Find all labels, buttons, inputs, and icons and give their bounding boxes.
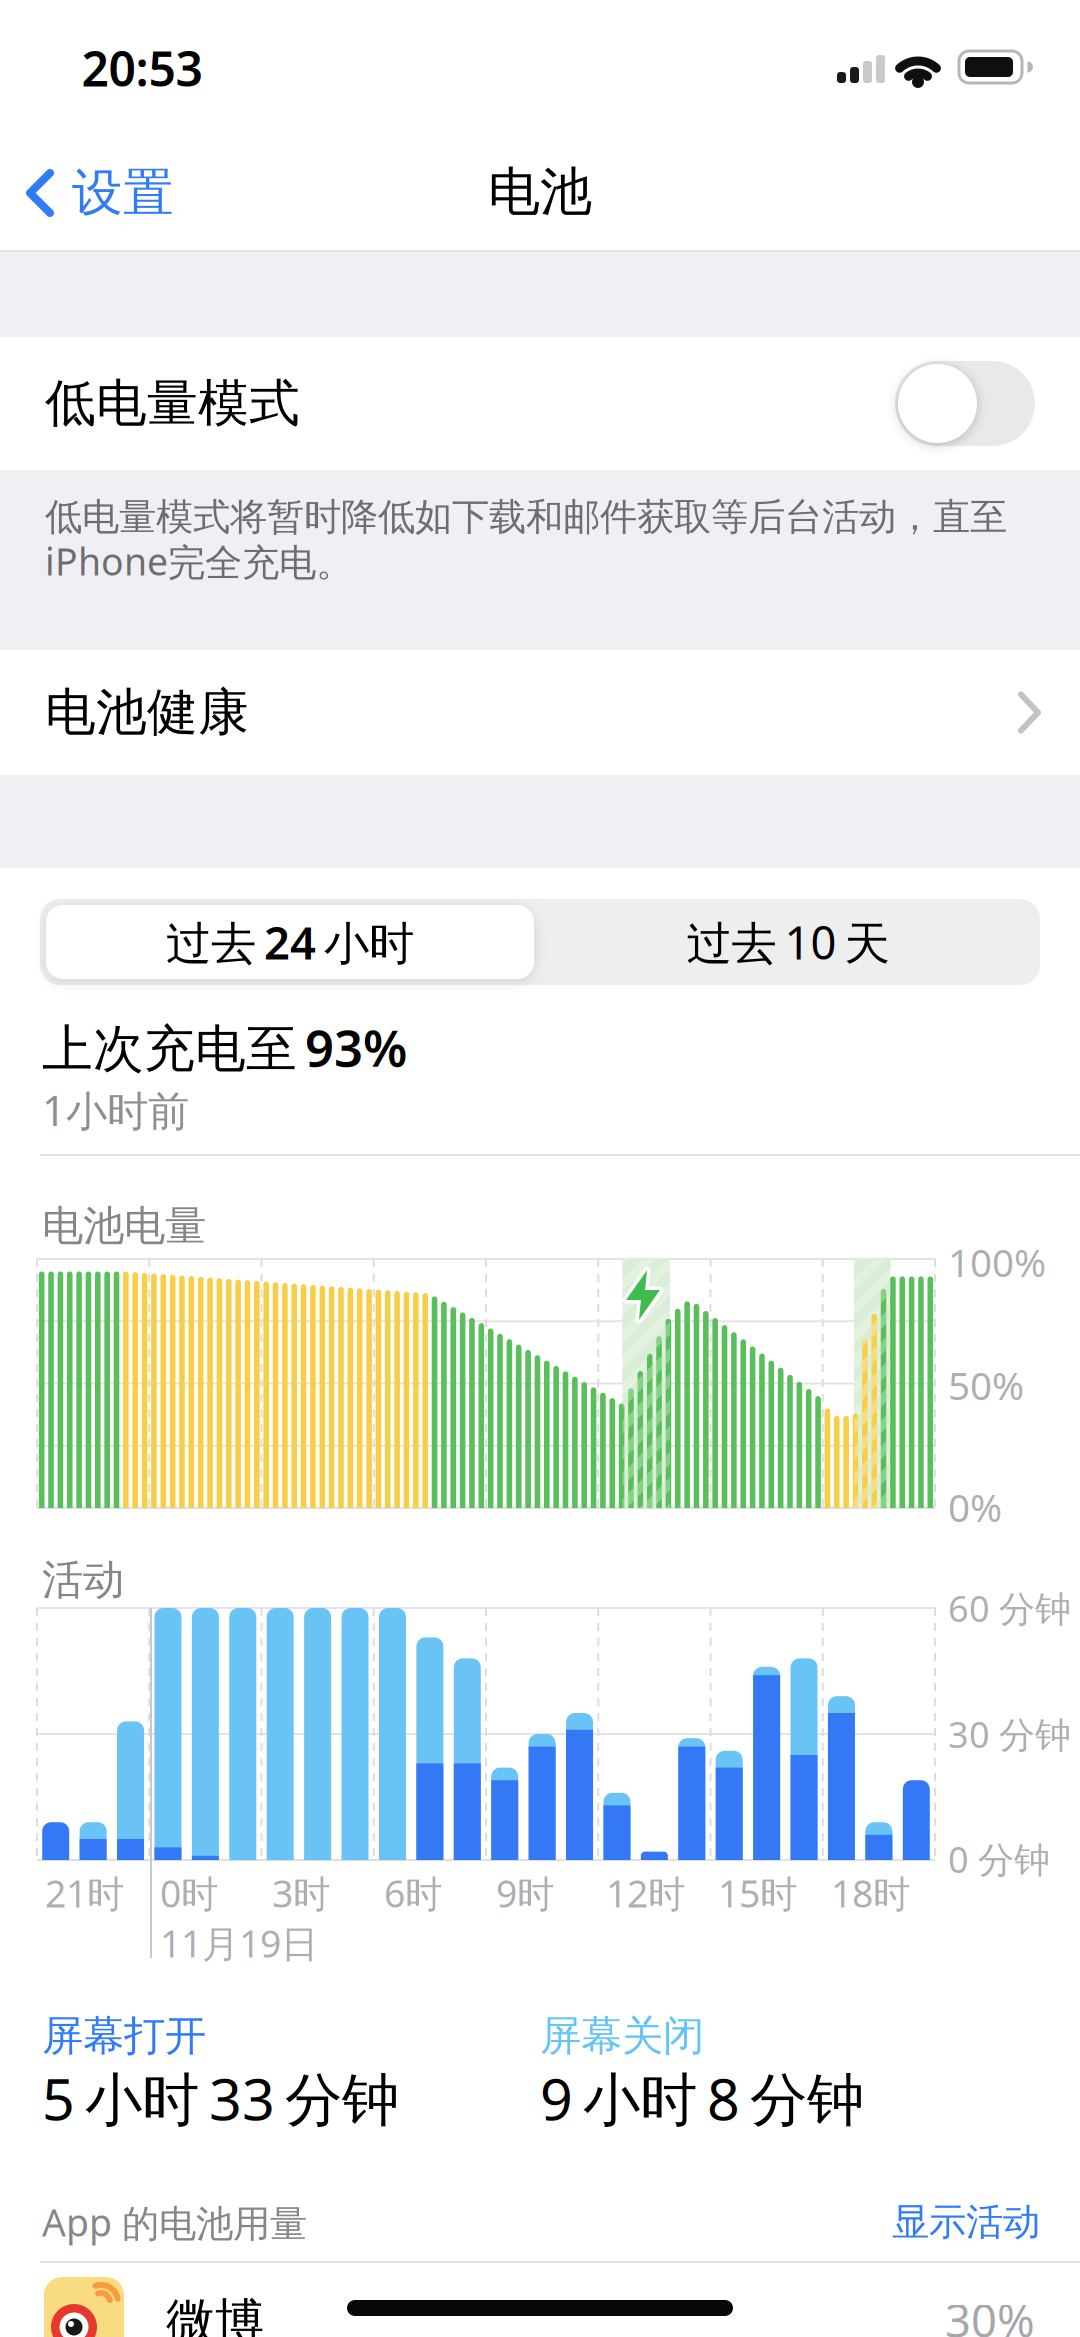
staticText: 5 小时 33 分钟 <box>42 2060 399 2136</box>
staticText: 1小时前 <box>42 1083 189 1137</box>
staticText: 活动 <box>42 1555 124 1605</box>
button[interactable]: 过去 24 小时 <box>46 905 534 979</box>
staticText: 9时 <box>496 1868 554 1918</box>
staticText: 18时 <box>831 1868 910 1918</box>
button[interactable]: 低电量模式 <box>0 337 1080 470</box>
button[interactable]: 显示活动 <box>0 0 1080 2337</box>
button[interactable]: 设置 <box>26 158 174 228</box>
staticText: 电池 <box>488 160 592 224</box>
staticText: 30 分钟 <box>948 1710 1071 1758</box>
staticText: 电池电量 <box>42 1201 206 1251</box>
button[interactable]: 电池健康 <box>0 650 1080 775</box>
staticText: App 的电池用量 <box>42 2197 307 2247</box>
staticText: 低电量模式 <box>45 372 300 435</box>
staticText: 12时 <box>606 1868 685 1918</box>
staticText: 低电量模式将暂时降低如下载和邮件获取等后台活动，直至 <box>45 494 1007 540</box>
button[interactable]: 过去 10 天 <box>548 905 1028 979</box>
staticText: 60 分钟 <box>948 1584 1071 1632</box>
staticText: 屏幕关闭 <box>540 2011 704 2061</box>
staticText: 0 分钟 <box>948 1835 1050 1883</box>
staticText: 过去 24 小时 <box>166 912 414 972</box>
staticText: 20:53 <box>81 36 202 100</box>
staticText: 设置 <box>72 162 174 224</box>
staticText: 0% <box>948 1481 1002 1533</box>
staticText: 50% <box>948 1359 1024 1411</box>
staticText: 6时 <box>384 1868 442 1918</box>
staticText: iPhone完全充电。 <box>45 536 353 586</box>
staticText: 0时 <box>160 1868 218 1918</box>
staticText: 3时 <box>272 1868 330 1918</box>
button[interactable]: 微博 <box>0 0 1080 2337</box>
staticText: 上次充电至 93% <box>42 1013 407 1081</box>
staticText: 电池健康 <box>45 681 249 744</box>
staticText: 11月19日 <box>160 1918 318 1968</box>
staticText: 过去 10 天 <box>686 912 889 972</box>
staticText: 微博 <box>166 2292 264 2337</box>
staticText: 30% <box>945 2290 1035 2337</box>
staticText: 9 小时 8 分钟 <box>540 2060 864 2136</box>
staticText: 屏幕打开 <box>42 2011 206 2061</box>
staticText: 100% <box>948 1236 1046 1288</box>
staticText: 15时 <box>718 1868 797 1918</box>
staticText: 21时 <box>45 1868 124 1918</box>
staticText: 显示活动 <box>892 2199 1040 2245</box>
